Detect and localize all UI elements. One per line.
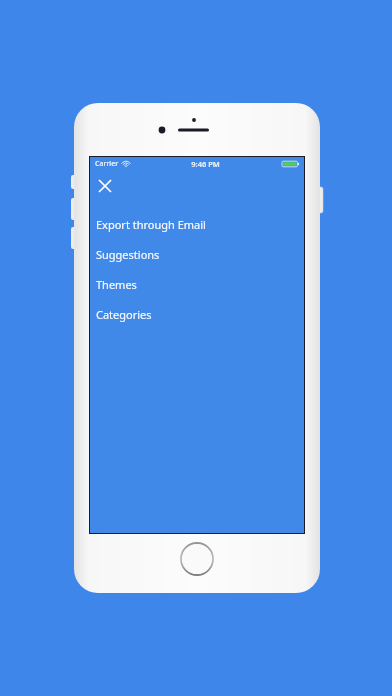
button[interactable]: Categories: [90, 299, 304, 329]
button[interactable]: Export through Email: [90, 209, 304, 239]
staticText: 9:46 PM: [191, 159, 220, 169]
staticText: Carrier: [95, 159, 119, 169]
button[interactable]: Suggestions: [90, 239, 304, 269]
button[interactable]: Close: [93, 174, 117, 198]
button[interactable]: Themes: [90, 269, 304, 299]
staticText: Themes: [96, 277, 137, 292]
other: Home: [177, 539, 217, 579]
staticText: Export through Email: [96, 217, 206, 232]
staticText: Suggestions: [96, 247, 160, 262]
staticText: Categories: [96, 307, 152, 322]
